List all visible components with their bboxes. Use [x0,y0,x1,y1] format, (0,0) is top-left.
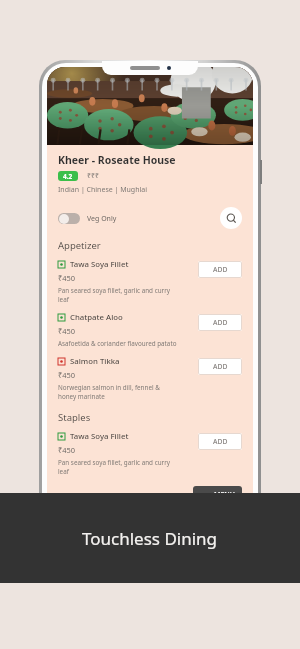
staticText: Norwegian salmon in dill, fennel & honey… [58,383,160,401]
button[interactable]: ADD [198,358,242,375]
staticText: ₹450 [58,326,76,336]
staticText: ADD [213,437,228,446]
staticText: Asafoetida & coriander flavoured patato [58,339,177,348]
button[interactable]: MENU [193,486,242,504]
staticText: Chatpate Aloo [70,312,123,323]
staticText: Staples [58,411,91,424]
button[interactable]: ADD [198,314,242,331]
staticText: ₹450 [58,370,76,380]
staticText: ₹450 [58,273,76,283]
staticText: 4.2 [63,172,73,181]
button[interactable]: Tawa Soya Fillet [58,431,242,476]
staticText: Veg Only [87,214,117,224]
staticText: Touchless Dining [82,527,218,550]
staticText: Indian | Chinese | Mughlai [58,185,148,195]
staticText: ₹450 [58,445,76,455]
staticText: ADD [213,265,228,274]
staticText: Appetizer [58,239,101,252]
button[interactable]: Veg Only [58,213,117,224]
button[interactable]: ADD [198,433,242,450]
staticText: Tawa Soya Fillet [70,431,129,442]
staticText: Salmon Tikka [70,356,120,367]
staticText: Pan seared soya fillet, garlic and curry… [58,286,170,304]
button[interactable]: Salmon Tikka [58,356,242,401]
button[interactable]: Tawa Soya Fillet [58,259,242,304]
staticText: Tawa Soya Fillet [70,259,129,270]
staticText: Pan seared soya fillet, garlic and curry… [58,458,170,476]
staticText: MENU [214,490,235,500]
staticText: ₹₹₹ [87,171,100,181]
button[interactable]: Search [220,207,242,229]
staticText: ADD [213,362,228,371]
button[interactable]: ADD [198,261,242,278]
button[interactable]: Chatpate Aloo [58,312,242,348]
staticText: ADD [213,318,228,327]
staticText: Kheer - Roseate House [58,153,176,167]
